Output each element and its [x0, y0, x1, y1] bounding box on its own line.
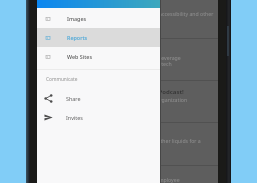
button[interactable]: Create a Leverage	[37, 38, 218, 80]
staticText: Create a Leverage	[137, 54, 181, 61]
staticText: Reports	[67, 34, 88, 41]
staticText: Start a Podcast!	[137, 88, 184, 96]
button[interactable]: Images	[37, 9, 160, 28]
staticText: Communicate	[46, 76, 78, 83]
button[interactable]: Start a Podcast!	[37, 80, 218, 122]
staticText: with an organization	[137, 96, 188, 103]
staticText: Protect Employee	[137, 176, 180, 183]
button[interactable]: Web Sites	[37, 47, 160, 66]
button[interactable]: Invites	[37, 108, 160, 127]
button[interactable]: Reports	[37, 28, 160, 47]
staticText: for a new tech	[137, 60, 172, 67]
staticText: Invites	[66, 114, 83, 121]
button[interactable]: Protect Employee	[37, 165, 218, 183]
staticText: Replace other liquids for a	[137, 137, 201, 144]
staticText: Improve Accessibility and other	[137, 10, 214, 17]
button[interactable]: Replace other liquids for a	[37, 122, 218, 165]
button[interactable]: Improve Accessibility and other	[37, 0, 218, 38]
staticText: Share	[66, 95, 81, 102]
button[interactable]: Share	[37, 89, 160, 108]
staticText: Web Sites	[67, 53, 93, 60]
staticText: Images	[67, 15, 87, 22]
